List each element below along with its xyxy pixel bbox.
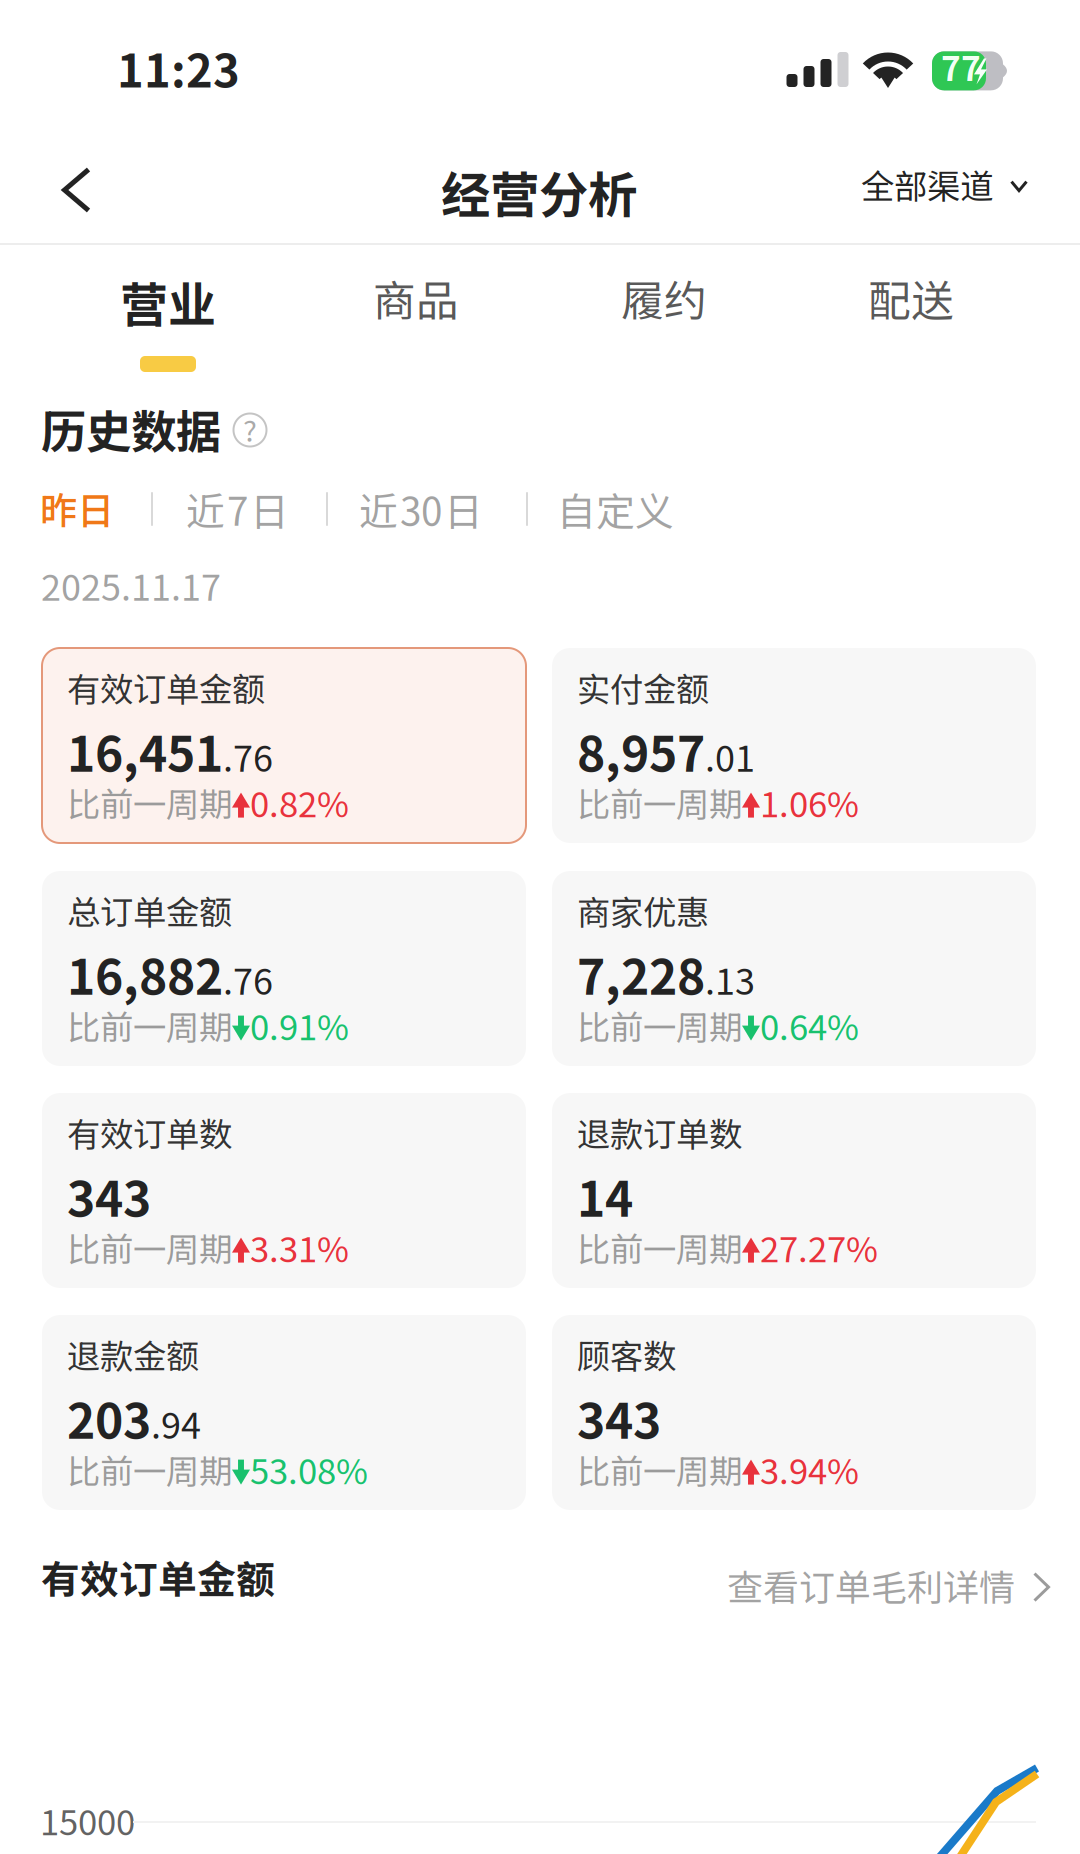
staticText: 77 — [941, 42, 981, 91]
button[interactable]: 有效订单数 — [42, 1093, 526, 1288]
button[interactable]: 昨日 — [26, 465, 128, 551]
button[interactable]: 实付金额 — [552, 648, 1036, 843]
staticText: 比前一周期 — [577, 1001, 742, 1049]
staticText: .13 — [705, 953, 755, 1005]
button[interactable]: 顾客数 — [552, 1315, 1036, 1510]
button[interactable]: 近 7 日 — [172, 465, 303, 553]
staticText: 343 — [67, 1161, 151, 1230]
staticText: 16,882 — [67, 939, 223, 1008]
staticText: 配送 — [868, 267, 954, 329]
staticText: 8,957 — [577, 716, 705, 785]
staticText: 比前一周期 — [577, 1445, 742, 1493]
staticText: 总订单金额 — [67, 886, 232, 934]
staticText: 商品 — [373, 267, 459, 329]
staticText: 实付金额 — [577, 663, 709, 711]
staticText: .76 — [223, 953, 273, 1005]
button[interactable]: Help — [222, 402, 278, 458]
button[interactable]: 履约 — [595, 245, 733, 351]
staticText: 查看订单毛利详情 — [727, 1559, 1015, 1611]
button[interactable]: 退款订单数 — [552, 1093, 1036, 1288]
button[interactable]: 全部渠道 — [837, 134, 1052, 234]
staticText: 53.08% — [250, 1444, 368, 1494]
staticText: 203 — [67, 1383, 151, 1452]
staticText: 有效订单数 — [67, 1108, 232, 1156]
staticText: 14 — [577, 1161, 633, 1230]
button[interactable]: Back — [30, 137, 123, 243]
staticText: 退款金额 — [67, 1330, 199, 1378]
staticText: 0.82% — [250, 777, 349, 827]
staticText: 比前一周期 — [67, 778, 232, 826]
staticText: 有效订单金额 — [41, 1549, 275, 1605]
staticText: 顾客数 — [577, 1330, 676, 1378]
staticText: 有效订单金额 — [67, 663, 265, 711]
staticText: 0.64% — [760, 1000, 859, 1050]
staticText: 历史数据 — [41, 396, 221, 462]
staticText: 3.94% — [760, 1444, 859, 1494]
staticText: 11:23 — [117, 35, 240, 101]
staticText: .01 — [705, 730, 755, 782]
staticText: 15000 — [40, 1795, 135, 1845]
staticText: ? — [243, 408, 257, 450]
staticText: 7,228 — [577, 939, 705, 1008]
staticText: 比前一周期 — [577, 1223, 742, 1271]
button[interactable]: 退款金额 — [42, 1315, 526, 1510]
staticText: 近 7 日 — [186, 481, 289, 537]
button[interactable]: 商家优惠 — [552, 871, 1036, 1066]
staticText: 退款订单数 — [577, 1108, 742, 1156]
staticText: 2025.11.17 — [41, 559, 221, 611]
button[interactable]: 查看订单毛利详情 — [709, 1541, 1068, 1629]
staticText: 比前一周期 — [67, 1445, 232, 1493]
staticText: 自定义 — [557, 481, 674, 537]
staticText: 经营分析 — [441, 156, 637, 227]
staticText: 比前一周期 — [577, 778, 742, 826]
button[interactable]: 配送 — [842, 245, 980, 351]
button[interactable]: 自定义 — [543, 465, 688, 553]
button[interactable]: 有效订单金额 — [42, 648, 526, 843]
staticText: 全部渠道 — [861, 160, 993, 208]
staticText: 27.27% — [760, 1222, 878, 1272]
staticText: 比前一周期 — [67, 1001, 232, 1049]
button[interactable]: 总订单金额 — [42, 871, 526, 1066]
staticText: 16,451 — [67, 716, 223, 785]
button[interactable]: 商品 — [347, 245, 485, 351]
staticText: 昨日 — [40, 481, 114, 535]
staticText: 比前一周期 — [67, 1223, 232, 1271]
staticText: 0.91% — [250, 1000, 349, 1050]
staticText: 1.06% — [760, 777, 859, 827]
staticText: 343 — [577, 1383, 661, 1452]
button[interactable]: 近 30 日 — [345, 465, 497, 553]
staticText: 3.31% — [250, 1222, 349, 1272]
staticText: .94 — [151, 1397, 201, 1449]
staticText: .76 — [223, 730, 273, 782]
staticText: 营业 — [120, 267, 216, 336]
button[interactable]: 营业 — [94, 245, 242, 358]
staticText: 商家优惠 — [577, 886, 709, 934]
staticText: 近 30 日 — [359, 481, 483, 537]
staticText: 履约 — [621, 267, 707, 329]
